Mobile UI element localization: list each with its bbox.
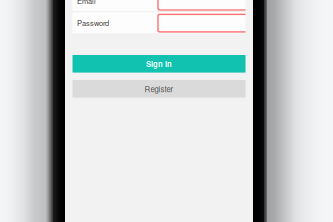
staticText: Email — [77, 0, 96, 6]
staticText: Register — [144, 83, 173, 94]
button[interactable]: Register — [72, 80, 245, 98]
staticText: Sign In — [146, 58, 172, 69]
button[interactable]: Sign In — [72, 55, 245, 73]
staticText: Password — [77, 17, 109, 28]
